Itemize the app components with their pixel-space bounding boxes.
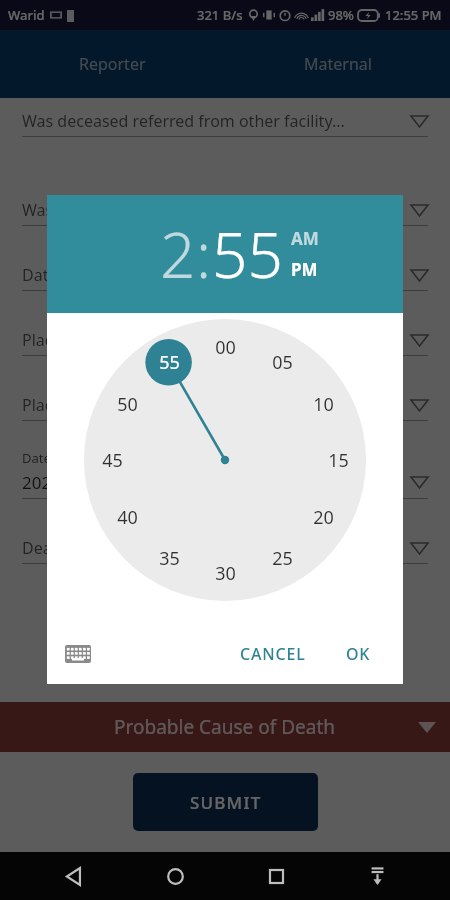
staticText: 45: [102, 448, 123, 473]
staticText: 00: [215, 335, 236, 360]
staticText: Death was due to: [22, 537, 411, 559]
button[interactable]: SUBMIT: [133, 773, 318, 831]
staticText: Date of admission: [22, 264, 411, 286]
staticText: 10: [313, 392, 334, 417]
button[interactable]: Recent apps: [253, 853, 299, 899]
button[interactable]: 55: [84, 319, 366, 601]
staticText: 2023-01-11: [22, 471, 411, 494]
button[interactable]: 05: [84, 319, 366, 601]
staticText: 05: [272, 350, 293, 375]
button[interactable]: PM: [291, 258, 318, 281]
button[interactable]: 2: [160, 212, 196, 296]
button[interactable]: Back: [51, 853, 97, 899]
button[interactable]: 10: [84, 319, 366, 601]
button[interactable]: 00: [84, 319, 366, 601]
button[interactable]: OK: [334, 635, 383, 673]
staticText: 321 B/s: [197, 6, 243, 24]
staticText: SUBMIT: [190, 791, 262, 814]
staticText: Reporter: [79, 53, 146, 75]
button[interactable]: 2023-01-11: [22, 471, 428, 499]
button[interactable]: AM: [291, 227, 319, 250]
staticText: AM: [291, 227, 319, 250]
button[interactable]: 20: [84, 319, 366, 601]
staticText: 12:55 PM: [385, 6, 442, 24]
staticText: Was deceased admitted in this facility?: [22, 199, 411, 221]
button[interactable]: 40: [84, 319, 366, 601]
button[interactable]: Was deceased referred from other facilit…: [22, 110, 428, 137]
button[interactable]: Home: [152, 853, 198, 899]
staticText: 55: [159, 350, 180, 375]
button[interactable]: 55: [212, 212, 283, 296]
staticText: Warid: [8, 6, 45, 24]
button[interactable]: Was deceased admitted in this facility?: [22, 199, 428, 226]
staticText: Place of death: [22, 329, 411, 351]
staticText: Probable Cause of Death: [114, 714, 336, 740]
staticText: Date of death: [22, 449, 106, 467]
staticText: :: [196, 212, 212, 296]
button[interactable]: Maternal: [225, 30, 450, 98]
staticText: Place of death - other: [22, 394, 411, 416]
staticText: 55: [212, 212, 283, 296]
button[interactable]: 30: [84, 319, 366, 601]
staticText: 20: [313, 505, 334, 530]
staticText: 15: [328, 448, 349, 473]
staticText: 50: [117, 392, 138, 417]
staticText: Was deceased referred from other facilit…: [22, 110, 411, 132]
button[interactable]: Death was due to: [22, 537, 428, 564]
button[interactable]: 35: [84, 319, 366, 601]
staticText: CANCEL: [240, 643, 306, 665]
staticText: 25: [272, 546, 293, 571]
button[interactable]: CANCEL: [228, 635, 318, 673]
button[interactable]: Date of admission: [22, 264, 428, 291]
staticText: OK: [346, 643, 371, 665]
staticText: 30: [215, 561, 236, 586]
button[interactable]: Place of death: [22, 329, 428, 356]
button[interactable]: Hide keyboard: [354, 853, 400, 899]
staticText: 40: [117, 505, 138, 530]
staticText: 98%: [328, 6, 354, 24]
button[interactable]: Switch to text input: [61, 637, 95, 671]
button[interactable]: Reporter: [0, 30, 225, 98]
staticText: PM: [291, 258, 318, 281]
button[interactable]: 45: [84, 319, 366, 601]
button[interactable]: 25: [84, 319, 366, 601]
button[interactable]: Probable Cause of Death: [0, 702, 450, 752]
staticText: Maternal: [304, 53, 372, 75]
staticText: 35: [159, 546, 180, 571]
button[interactable]: Place of death - other: [22, 394, 428, 421]
staticText: 2: [160, 212, 196, 296]
button[interactable]: 15: [84, 319, 366, 601]
button[interactable]: 50: [84, 319, 366, 601]
